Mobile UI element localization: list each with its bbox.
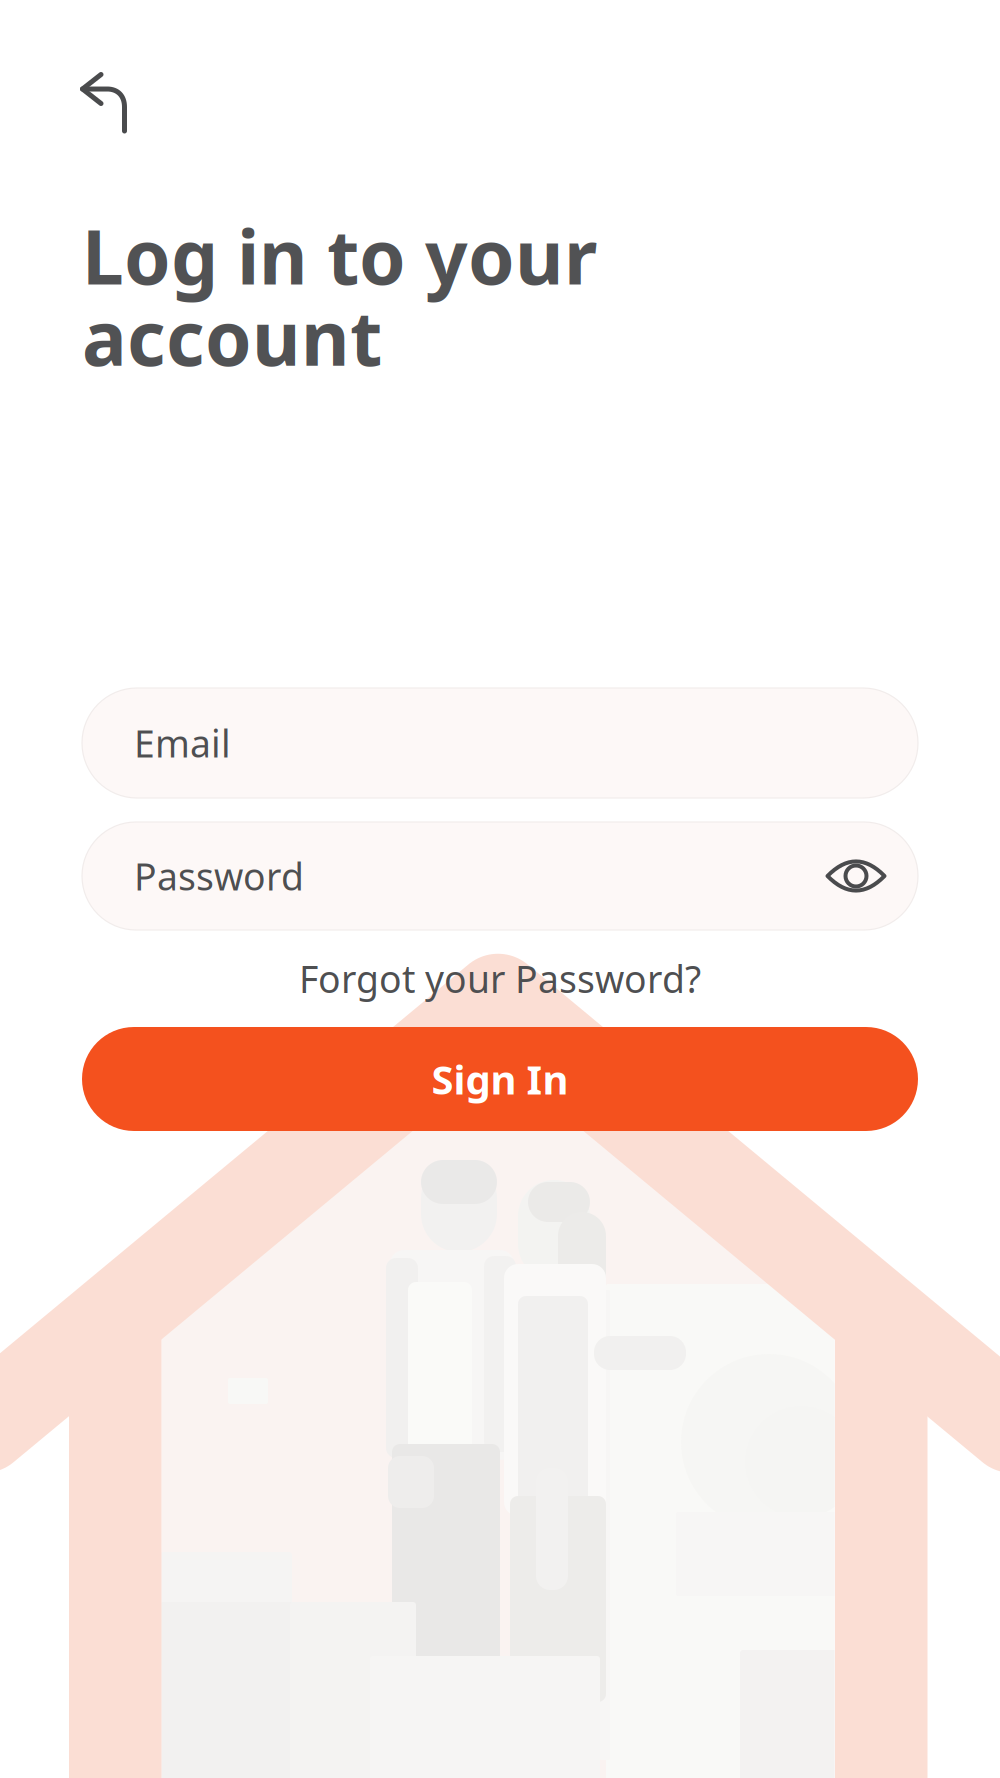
staticText: Email <box>134 718 231 768</box>
staticText: Forgot your Password? <box>299 954 701 1003</box>
button[interactable]: Forgot your Password? <box>82 930 918 1027</box>
staticText: Log in to your <box>82 206 597 305</box>
staticText: account <box>82 287 382 386</box>
button[interactable]: Show password <box>810 830 902 922</box>
staticText: Password <box>134 851 304 901</box>
button[interactable]: Back <box>0 0 156 148</box>
button[interactable]: Sign In <box>82 1027 918 1131</box>
staticText: Sign In <box>431 1052 568 1105</box>
